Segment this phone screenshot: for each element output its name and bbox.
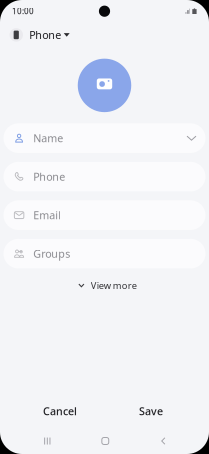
button[interactable]: Phone [0,22,209,47]
button[interactable]: Save [120,397,182,425]
staticText: Save [139,404,163,418]
button[interactable]: Recents [18,430,76,452]
button[interactable]: View more [75,272,134,298]
staticText: View more [91,279,137,292]
button[interactable]: Phone [3,162,205,191]
button[interactable]: Cancel [0,397,120,425]
staticText: Name [33,131,63,145]
button[interactable]: Name [3,123,205,153]
staticText: 10:00 [12,6,34,16]
staticText: Cancel [43,404,77,418]
staticText: Phone [29,28,61,42]
staticText: Phone [33,170,65,184]
staticText: Email [33,208,61,222]
button[interactable]: Back [134,430,192,452]
staticText: Groups [33,247,70,261]
button[interactable]: Groups [3,239,205,268]
button[interactable]: Email [3,200,205,230]
button[interactable]: Home [76,430,134,452]
